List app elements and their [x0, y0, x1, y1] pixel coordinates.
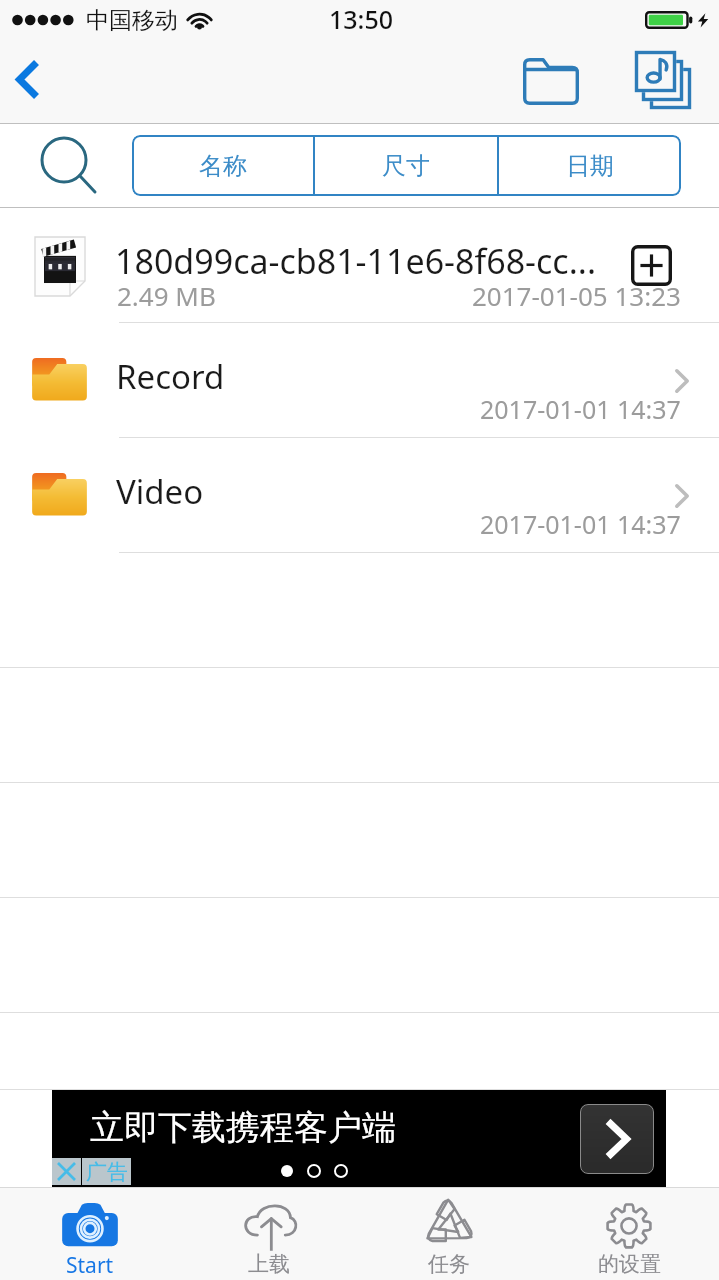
button[interactable]: 日期	[499, 135, 681, 196]
staticText: Record	[116, 354, 225, 399]
button[interactable]: 180d99ca-cb81-11e6-8f68-cc...	[0, 208, 719, 323]
staticText: 2.49 MB	[117, 278, 216, 313]
button[interactable]: Search	[30, 125, 112, 207]
staticText: 名称	[199, 151, 247, 181]
button[interactable]: 上载	[179, 1188, 359, 1280]
button[interactable]: Folder	[508, 46, 593, 117]
button[interactable]: Record	[0, 323, 719, 438]
button[interactable]: Back	[0, 44, 56, 115]
staticText: 2017-01-01 14:37	[480, 392, 681, 426]
button[interactable]: Media library	[620, 40, 703, 117]
button[interactable]: 任务	[359, 1188, 539, 1280]
button[interactable]: 名称	[132, 135, 313, 196]
staticText: 180d99ca-cb81-11e6-8f68-cc...	[115, 238, 625, 284]
button[interactable]: Close ad	[52, 1158, 81, 1185]
staticText: Start	[66, 1251, 114, 1280]
staticText: 尺寸	[382, 151, 430, 181]
staticText: 上载	[248, 1251, 290, 1277]
staticText: 2017-01-05 13:23	[472, 278, 681, 313]
button[interactable]: 立即下载携程客户端	[52, 1090, 666, 1187]
button[interactable]: Video	[0, 438, 719, 553]
staticText: 的设置	[598, 1251, 661, 1277]
staticText: 13:50	[329, 2, 394, 36]
staticText: 中国移动	[86, 6, 178, 35]
button[interactable]: 尺寸	[315, 135, 497, 196]
staticText: 2017-01-01 14:37	[480, 507, 681, 541]
button[interactable]: Add	[625, 239, 678, 292]
button[interactable]: Next ad	[580, 1104, 654, 1174]
staticText: 日期	[566, 151, 614, 181]
button[interactable]: 的设置	[539, 1188, 719, 1280]
button[interactable]: Start	[0, 1188, 179, 1280]
staticText: 广告	[86, 1159, 128, 1185]
staticText: Video	[116, 469, 204, 514]
staticText: 立即下载携程客户端	[90, 1106, 396, 1149]
staticText: 任务	[428, 1251, 470, 1277]
